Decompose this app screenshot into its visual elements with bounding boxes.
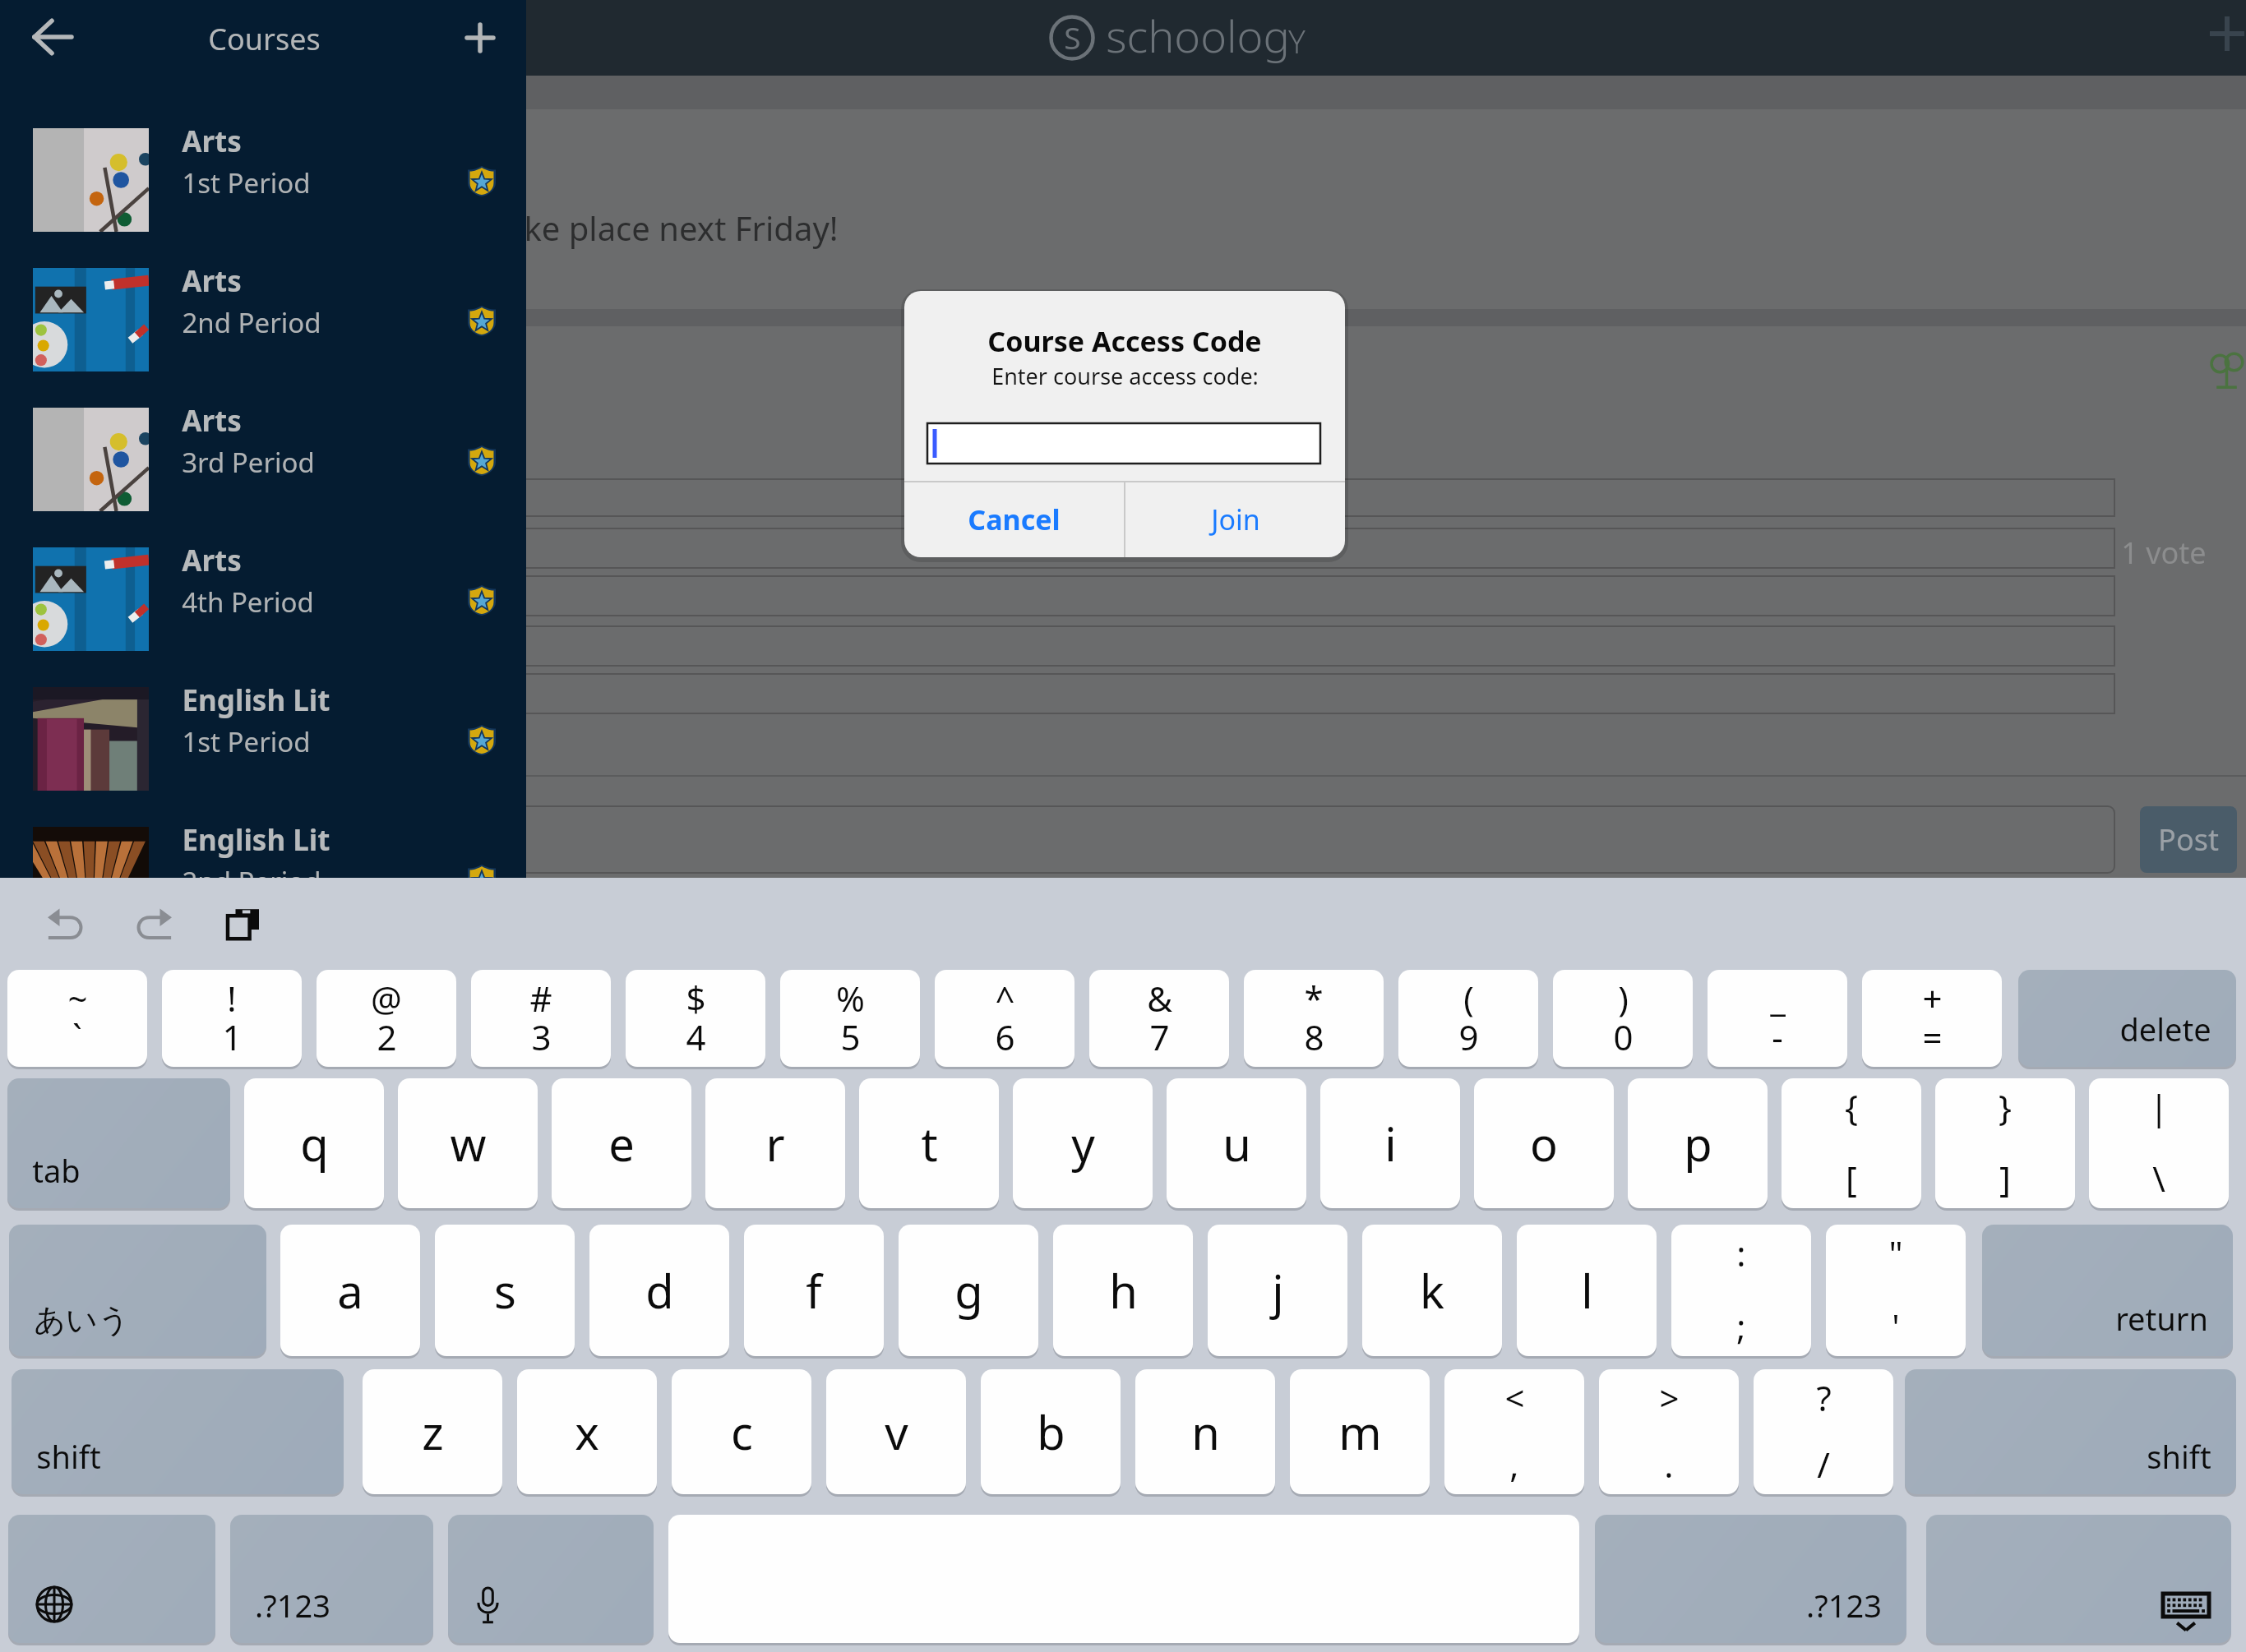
button[interactable]: English Lit bbox=[0, 687, 526, 802]
staticText: .?123 bbox=[255, 1584, 330, 1627]
button[interactable]: % bbox=[780, 970, 920, 1067]
button[interactable]: ~ bbox=[7, 970, 147, 1067]
button[interactable]: k bbox=[1362, 1225, 1502, 1356]
button[interactable]: p bbox=[1628, 1078, 1768, 1208]
button[interactable]: delete bbox=[2018, 970, 2236, 1067]
button[interactable]: tab bbox=[7, 1078, 230, 1208]
staticText: delete bbox=[2119, 1008, 2211, 1050]
button[interactable]: * bbox=[1244, 970, 1384, 1067]
staticText: " bbox=[1888, 1230, 1903, 1276]
button[interactable]: Arts bbox=[0, 408, 526, 523]
button[interactable]: @ bbox=[317, 970, 456, 1067]
button[interactable]: ) bbox=[1553, 970, 1693, 1067]
button[interactable]: j bbox=[1208, 1225, 1347, 1356]
staticText: tab bbox=[32, 1149, 81, 1192]
button[interactable]: _ bbox=[1708, 970, 1847, 1067]
button[interactable]: t bbox=[859, 1078, 999, 1208]
staticText: return bbox=[2115, 1297, 2208, 1340]
staticText: 3 bbox=[531, 1013, 552, 1060]
button[interactable]: ! bbox=[162, 970, 302, 1067]
button[interactable]: i bbox=[1320, 1078, 1460, 1208]
button[interactable]: Back bbox=[20, 4, 85, 70]
button[interactable]: あいう bbox=[9, 1225, 266, 1356]
button[interactable]: { bbox=[1782, 1078, 1921, 1208]
staticText: 0 bbox=[1613, 1013, 1634, 1060]
staticText: = bbox=[1922, 1013, 1943, 1060]
button[interactable]: c bbox=[672, 1369, 811, 1494]
staticText: < bbox=[1504, 1374, 1525, 1421]
button[interactable]: h bbox=[1053, 1225, 1193, 1356]
button[interactable]: $ bbox=[626, 970, 765, 1067]
button[interactable]: " bbox=[1826, 1225, 1966, 1356]
button[interactable]: d bbox=[589, 1225, 729, 1356]
staticText: Y bbox=[1288, 19, 1306, 62]
button[interactable]: n bbox=[1135, 1369, 1275, 1494]
button[interactable]: Redo bbox=[121, 898, 187, 948]
button[interactable]: q bbox=[244, 1078, 384, 1208]
button[interactable]: Undo bbox=[33, 898, 99, 948]
button[interactable]: > bbox=[1599, 1369, 1739, 1494]
button[interactable]: & bbox=[1089, 970, 1229, 1067]
staticText: g bbox=[954, 1259, 983, 1322]
button[interactable]: a bbox=[280, 1225, 420, 1356]
button[interactable]: e bbox=[552, 1078, 691, 1208]
button[interactable]: Dictation bbox=[448, 1515, 654, 1643]
button[interactable]: Paste bbox=[212, 898, 275, 948]
button[interactable]: v bbox=[826, 1369, 966, 1494]
button[interactable]: Switch language bbox=[8, 1515, 215, 1643]
staticText: e bbox=[608, 1112, 635, 1174]
button[interactable]: z bbox=[363, 1369, 502, 1494]
staticText: i bbox=[1384, 1112, 1397, 1174]
button[interactable]: + bbox=[1862, 970, 2002, 1067]
button[interactable]: .?123 bbox=[230, 1515, 433, 1643]
button[interactable]: y bbox=[1013, 1078, 1153, 1208]
staticText: あいう bbox=[34, 1300, 130, 1340]
staticText: 5 bbox=[840, 1013, 861, 1060]
button[interactable]: o bbox=[1474, 1078, 1614, 1208]
button[interactable]: f bbox=[744, 1225, 884, 1356]
staticText: Courses bbox=[208, 19, 321, 59]
button[interactable]: w bbox=[398, 1078, 538, 1208]
button[interactable]: Arts bbox=[0, 547, 526, 662]
button[interactable]: Join bbox=[1125, 482, 1345, 557]
button[interactable]: .?123 bbox=[1595, 1515, 1906, 1643]
button[interactable]: u bbox=[1167, 1078, 1306, 1208]
button[interactable]: Post bbox=[2140, 806, 2237, 873]
button[interactable]: x bbox=[517, 1369, 657, 1494]
staticText: Arts bbox=[182, 541, 242, 580]
button[interactable]: Hide keyboard bbox=[1926, 1515, 2231, 1643]
staticText: 1 bbox=[222, 1013, 243, 1060]
button[interactable]: shift bbox=[12, 1369, 344, 1494]
staticText: ke place next Friday! bbox=[524, 205, 839, 250]
button[interactable]: m bbox=[1290, 1369, 1430, 1494]
button[interactable]: s bbox=[435, 1225, 575, 1356]
button[interactable]: Add bbox=[2203, 10, 2246, 58]
button[interactable]: g bbox=[899, 1225, 1038, 1356]
button[interactable]: shift bbox=[1905, 1369, 2236, 1494]
staticText: _ bbox=[1770, 975, 1786, 1022]
staticText: y bbox=[1071, 1112, 1095, 1174]
button[interactable]: Cancel bbox=[904, 482, 1124, 557]
button[interactable]: return bbox=[1982, 1225, 2233, 1356]
button[interactable]: } bbox=[1935, 1078, 2075, 1208]
button[interactable]: # bbox=[471, 970, 611, 1067]
button[interactable]: r bbox=[705, 1078, 845, 1208]
button[interactable]: < bbox=[1444, 1369, 1584, 1494]
button[interactable]: ? bbox=[1754, 1369, 1893, 1494]
button[interactable]: : bbox=[1671, 1225, 1811, 1356]
button[interactable]: l bbox=[1517, 1225, 1657, 1356]
staticText: % bbox=[836, 975, 865, 1022]
button[interactable]: | bbox=[2089, 1078, 2229, 1208]
staticText: . bbox=[1664, 1441, 1674, 1488]
button[interactable]: Arts bbox=[0, 128, 526, 243]
button[interactable]: ^ bbox=[935, 970, 1074, 1067]
button[interactable]: Add course bbox=[447, 5, 513, 71]
staticText: .?123 bbox=[1806, 1584, 1882, 1627]
button[interactable]: b bbox=[981, 1369, 1121, 1494]
staticText: ~ bbox=[67, 975, 88, 1022]
staticText: English Lit bbox=[182, 820, 330, 860]
button[interactable]: ( bbox=[1398, 970, 1538, 1067]
button[interactable]: English Lit bbox=[0, 827, 526, 942]
button[interactable]: Arts bbox=[0, 268, 526, 383]
